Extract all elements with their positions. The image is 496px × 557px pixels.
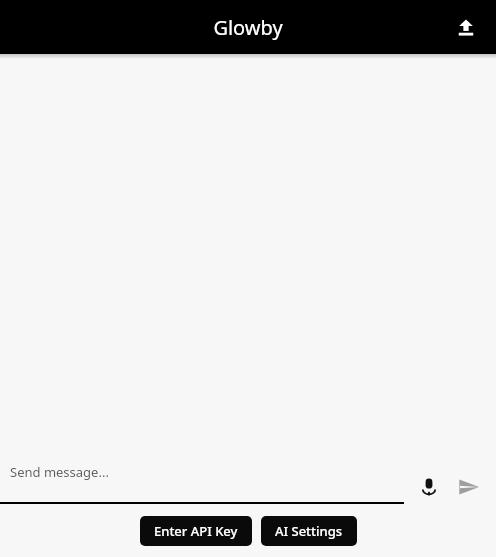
button[interactable]: AI Settings	[261, 516, 357, 546]
button[interactable]: Voice input	[412, 470, 446, 504]
staticText: Send message...	[10, 463, 109, 481]
staticText: Glowby	[213, 14, 283, 41]
button[interactable]: Send	[452, 470, 486, 504]
button[interactable]: Enter API Key	[140, 516, 252, 546]
button[interactable]: Send message...	[0, 463, 404, 504]
staticText: AI Settings	[275, 522, 343, 540]
staticText: Enter API Key	[154, 522, 238, 540]
button[interactable]: Upload	[444, 5, 488, 49]
